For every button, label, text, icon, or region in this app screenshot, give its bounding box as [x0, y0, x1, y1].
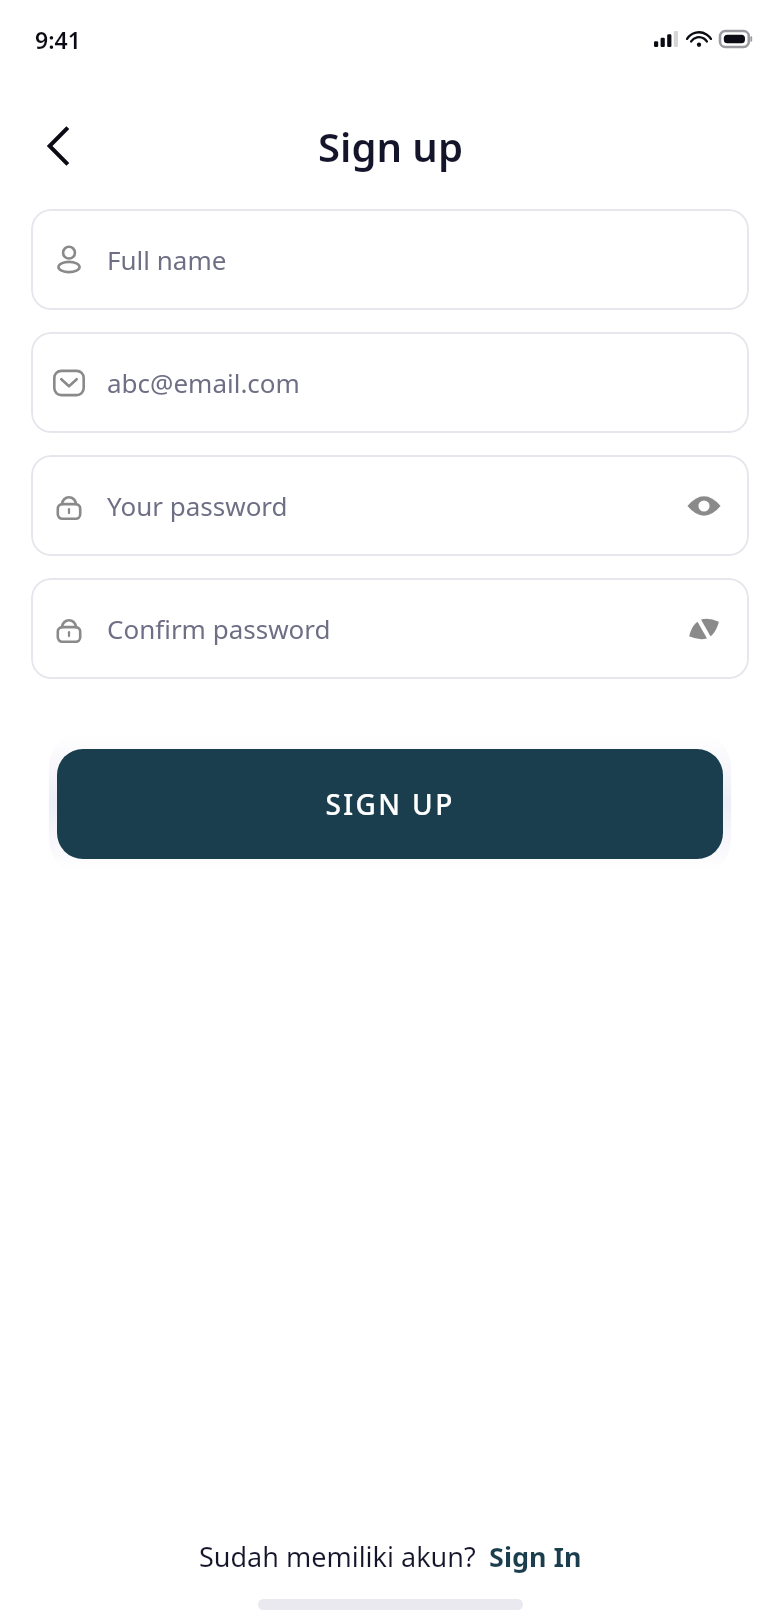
- staticText: abc@email.com: [107, 365, 727, 400]
- button[interactable]: SIGN UP: [57, 749, 723, 859]
- staticText: Full name: [107, 242, 727, 277]
- staticText: Confirm password: [107, 611, 681, 646]
- staticText: Sign In: [489, 1538, 582, 1575]
- staticText: 9:41: [35, 24, 81, 55]
- button[interactable]: Show password: [681, 483, 727, 529]
- button[interactable]: abc@email.com: [31, 332, 749, 433]
- button[interactable]: Confirm password: [31, 578, 749, 679]
- staticText: Sign up: [318, 119, 463, 173]
- button[interactable]: Full name: [31, 209, 749, 310]
- button[interactable]: Back: [30, 118, 86, 174]
- button[interactable]: Your password: [31, 455, 749, 556]
- staticText: Your password: [107, 488, 681, 523]
- button[interactable]: Hide password: [681, 606, 727, 652]
- staticText: SIGN UP: [325, 785, 455, 823]
- button[interactable]: Sign In: [489, 1538, 582, 1575]
- staticText: Sudah memiliki akun?: [199, 1538, 476, 1575]
